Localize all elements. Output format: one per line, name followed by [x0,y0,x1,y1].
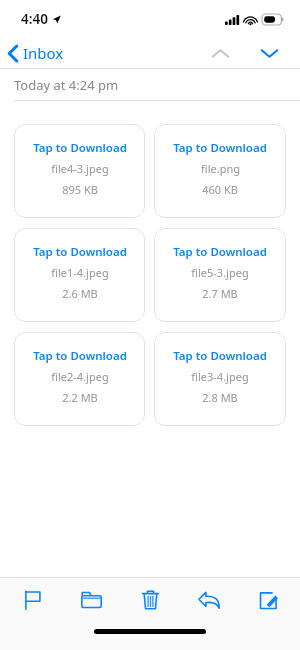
staticText: 2.6 MB [62,286,98,301]
button[interactable]: Reply [183,578,235,622]
button[interactable]: Tap to Download [14,332,145,426]
button[interactable]: Flag [6,578,58,622]
staticText: file.png [201,161,240,176]
staticText: Tap to Download [33,348,127,364]
button[interactable]: Inbox [0,40,72,66]
staticText: Tap to Download [173,140,267,156]
button[interactable]: Tap to Download [154,332,286,426]
button[interactable]: Tap to Download [14,228,145,322]
staticText: Tap to Download [173,348,267,364]
staticText: Tap to Download [33,140,127,156]
button[interactable]: Next message [251,43,288,64]
button[interactable]: Compose [242,578,294,622]
button[interactable]: Tap to Download [154,228,286,322]
staticText: 460 KB [202,182,238,197]
staticText: 895 KB [62,182,98,197]
button[interactable]: Tap to Download [14,124,145,218]
button[interactable]: Previous message [202,43,239,64]
staticText: file5-3.jpeg [191,265,249,280]
button[interactable]: Delete [124,578,176,622]
staticText: 2.8 MB [202,390,238,405]
staticText: file2-4.jpeg [51,369,109,384]
staticText: file1-4.jpeg [51,265,109,280]
staticText: file4-3.jpeg [51,161,109,176]
staticText: 2.2 MB [62,390,98,405]
staticText: 4:40 [21,10,48,28]
staticText: Tap to Download [33,244,127,260]
staticText: Today at 4:24 pm [14,76,119,94]
staticText: 2.7 MB [202,286,238,301]
button[interactable]: Move to folder [65,578,117,622]
staticText: file3-4.jpeg [191,369,249,384]
staticText: Inbox [23,43,64,63]
button[interactable]: Tap to Download [154,124,286,218]
staticText: Tap to Download [173,244,267,260]
